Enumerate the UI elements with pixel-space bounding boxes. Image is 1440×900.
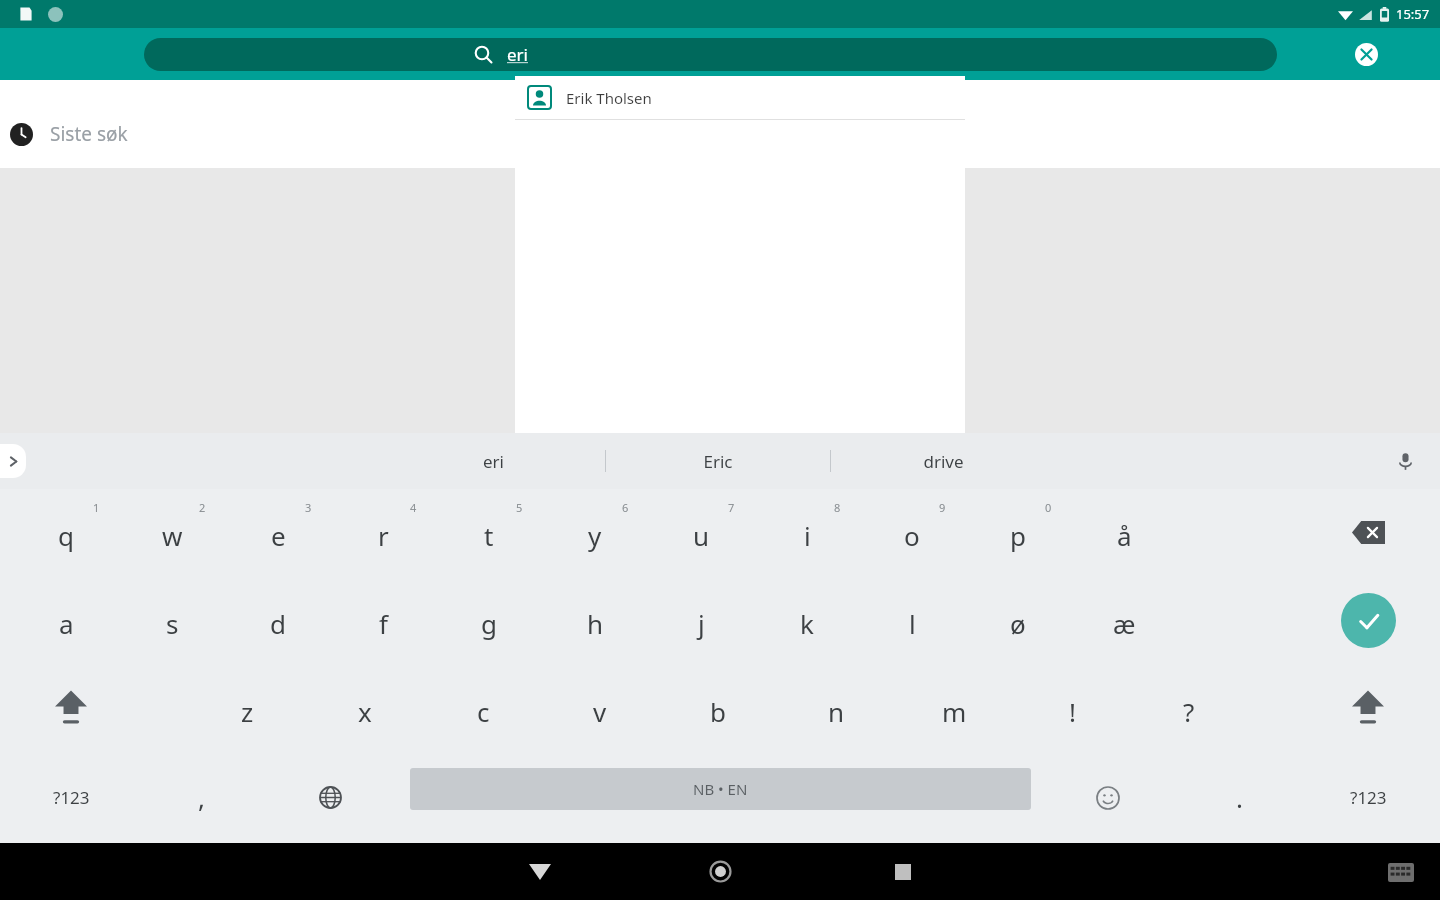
button[interactable]: l: [859, 576, 965, 664]
button[interactable]: Change language: [290, 752, 370, 843]
staticText: q: [58, 518, 74, 553]
staticText: u: [693, 518, 710, 553]
staticText: ø: [1010, 606, 1026, 641]
button[interactable]: a: [13, 576, 119, 664]
staticText: d: [270, 606, 286, 641]
button[interactable]: f: [330, 576, 436, 664]
staticText: 1: [93, 500, 100, 515]
button[interactable]: ø: [965, 576, 1071, 664]
staticText: z: [241, 694, 254, 729]
staticText: s: [166, 606, 179, 641]
button[interactable]: ,: [151, 752, 251, 843]
button[interactable]: Erik Tholsen: [515, 76, 965, 119]
button[interactable]: j: [648, 576, 754, 664]
button[interactable]: Backspace: [1313, 489, 1423, 576]
button[interactable]: ?: [1136, 664, 1242, 752]
staticText: f: [379, 606, 388, 641]
button[interactable]: Recent apps: [868, 843, 938, 900]
button[interactable]: c: [430, 664, 536, 752]
button[interactable]: k: [754, 576, 860, 664]
staticText: l: [909, 606, 916, 641]
staticText: 5: [516, 500, 523, 515]
staticText: r: [378, 518, 389, 553]
staticText: m: [942, 694, 967, 729]
staticText: 6: [622, 500, 629, 515]
button[interactable]: Clear search: [1348, 36, 1384, 72]
button[interactable]: Hide keyboard: [505, 843, 575, 900]
button[interactable]: z: [194, 664, 300, 752]
staticText: b: [710, 694, 726, 729]
staticText: t: [484, 518, 494, 553]
staticText: eri: [483, 450, 504, 473]
staticText: å: [1117, 518, 1132, 553]
staticText: 4: [410, 500, 417, 515]
button[interactable]: Shift: [16, 664, 126, 752]
staticText: g: [481, 606, 497, 641]
button[interactable]: eri: [381, 433, 605, 489]
button[interactable]: h: [542, 576, 648, 664]
button[interactable]: .: [1189, 752, 1289, 843]
staticText: Siste søk: [50, 121, 128, 147]
button[interactable]: 5: [436, 489, 542, 576]
button[interactable]: NB • EN: [410, 768, 1031, 810]
staticText: o: [904, 518, 920, 553]
button[interactable]: !: [1019, 664, 1125, 752]
staticText: 0: [1045, 500, 1052, 515]
button[interactable]: Expand suggestions: [0, 444, 26, 478]
button[interactable]: 4: [330, 489, 436, 576]
staticText: c: [477, 694, 490, 729]
staticText: y: [588, 518, 602, 553]
staticText: k: [800, 606, 814, 641]
button[interactable]: x: [312, 664, 418, 752]
staticText: x: [358, 694, 372, 729]
button[interactable]: Enter: [1313, 576, 1423, 664]
button[interactable]: Eric: [606, 433, 830, 489]
button[interactable]: Voice input: [1388, 444, 1422, 478]
button[interactable]: g: [436, 576, 542, 664]
other: Search: [474, 45, 493, 64]
button[interactable]: Search: [144, 38, 1277, 71]
staticText: 7: [728, 500, 735, 515]
button[interactable]: Shift: [1313, 664, 1423, 752]
button[interactable]: ?123: [21, 752, 121, 843]
staticText: Erik Tholsen: [566, 88, 652, 108]
button[interactable]: Switch keyboard: [1376, 847, 1426, 897]
button[interactable]: s: [119, 576, 225, 664]
button[interactable]: 0: [965, 489, 1071, 576]
staticText: e: [271, 518, 286, 553]
button[interactable]: m: [901, 664, 1007, 752]
staticText: 2: [199, 500, 206, 515]
button[interactable]: v: [547, 664, 653, 752]
button[interactable]: ?123: [1318, 752, 1418, 843]
button[interactable]: Home: [685, 843, 755, 900]
staticText: .: [1236, 780, 1243, 815]
button[interactable]: å: [1071, 489, 1177, 576]
staticText: a: [59, 606, 74, 641]
staticText: æ: [1113, 606, 1136, 641]
staticText: i: [804, 518, 811, 553]
staticText: !: [1069, 694, 1076, 729]
button[interactable]: 2: [119, 489, 225, 576]
button[interactable]: 6: [542, 489, 648, 576]
staticText: v: [593, 694, 607, 729]
button[interactable]: Emoji: [1068, 752, 1148, 843]
staticText: j: [698, 606, 705, 641]
button[interactable]: æ: [1071, 576, 1177, 664]
staticText: Eric: [703, 450, 733, 473]
button[interactable]: n: [783, 664, 889, 752]
button[interactable]: 1: [13, 489, 119, 576]
staticText: ,: [198, 780, 205, 815]
button[interactable]: 8: [754, 489, 860, 576]
staticText: 3: [305, 500, 312, 515]
button[interactable]: 9: [859, 489, 965, 576]
button[interactable]: b: [665, 664, 771, 752]
staticText: ?123: [1350, 786, 1387, 809]
staticText: n: [828, 694, 845, 729]
staticText: 8: [834, 500, 841, 515]
button[interactable]: d: [225, 576, 331, 664]
staticText: p: [1010, 518, 1026, 553]
button[interactable]: drive: [831, 433, 1055, 489]
button[interactable]: 3: [225, 489, 331, 576]
staticText: NB • EN: [693, 779, 748, 799]
button[interactable]: 7: [648, 489, 754, 576]
